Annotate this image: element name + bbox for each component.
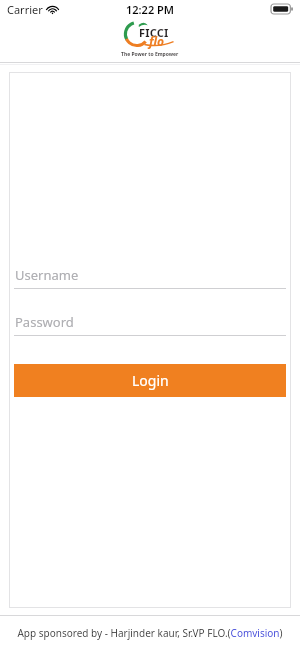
staticText: Login xyxy=(132,371,169,390)
staticText: flo xyxy=(149,33,165,49)
staticText: The Power to Empower xyxy=(121,51,179,58)
button[interactable]: Username xyxy=(14,262,286,288)
button[interactable]: Login xyxy=(14,364,286,397)
staticText: 12:22 PM xyxy=(126,2,175,17)
staticText: FICCI xyxy=(139,25,169,40)
button[interactable]: Password xyxy=(14,309,286,335)
staticText: Carrier xyxy=(7,2,43,17)
staticText: Password xyxy=(15,313,74,331)
staticText: Username xyxy=(15,266,79,284)
staticText: App sponsored by - Harjinder kaur, Sr.VP… xyxy=(17,626,283,640)
